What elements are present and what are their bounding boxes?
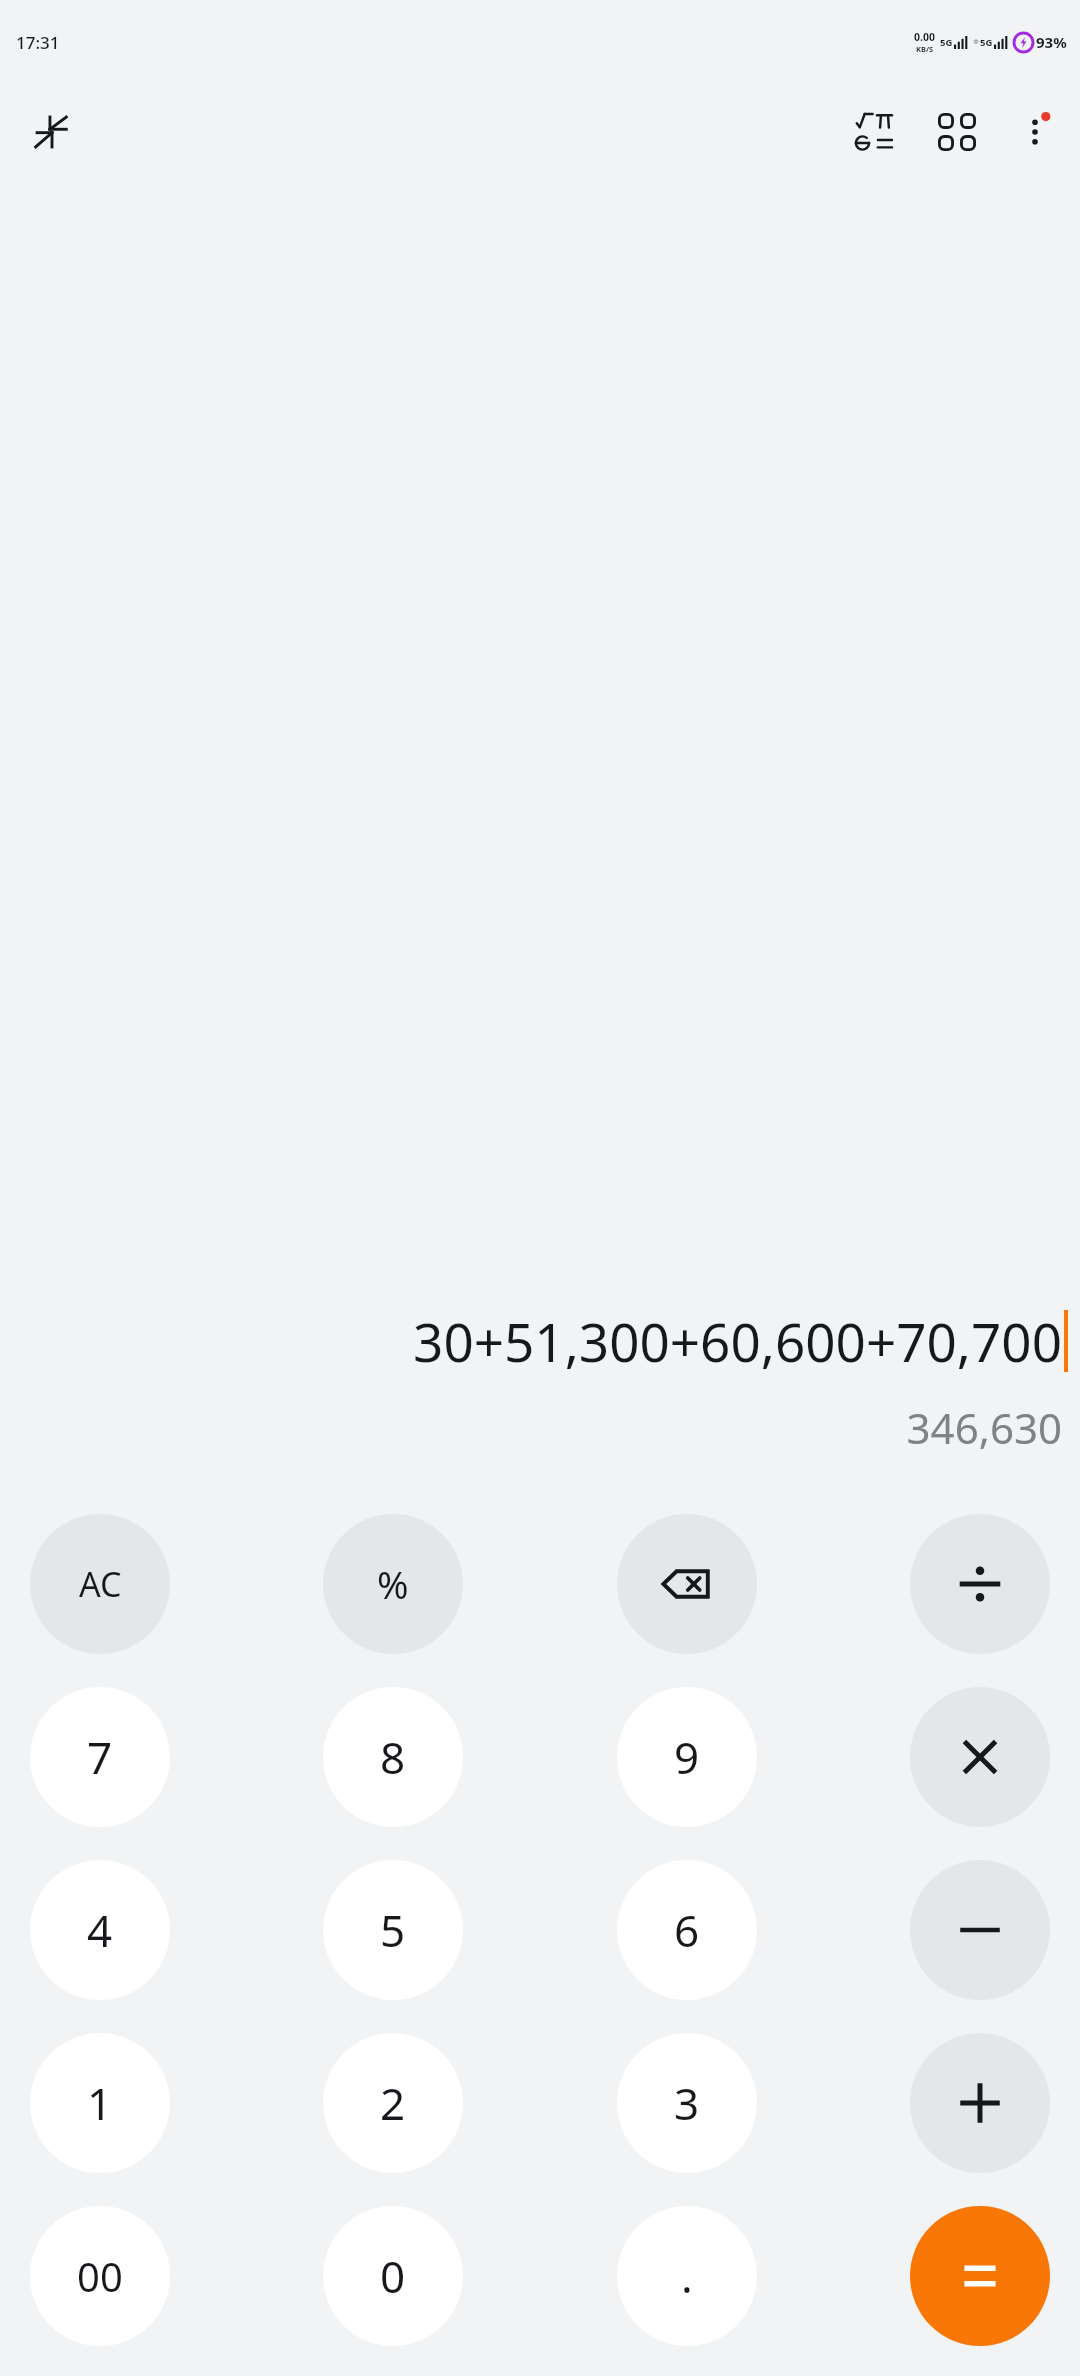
staticText: 6 [674,1900,700,1960]
staticText: KB/S [916,44,934,54]
staticText: 9 [674,1727,700,1787]
staticText: 93% [1036,32,1067,52]
button[interactable]: 5 [323,1860,463,2000]
button[interactable]: AC [30,1514,170,1654]
staticText: 5G [980,36,993,49]
button[interactable]: Equals [910,2206,1050,2346]
staticText: 0 [380,2246,406,2306]
button[interactable]: 00 [30,2206,170,2346]
button[interactable]: Minus [910,1860,1050,2000]
staticText: AC [79,1561,122,1607]
staticText: 17:31 [16,31,60,54]
staticText: 4 [87,1900,113,1960]
staticText: 0.00 [914,30,935,44]
button[interactable]: 9 [617,1687,757,1827]
button[interactable]: 3 [617,2033,757,2173]
button[interactable]: . [617,2206,757,2346]
button[interactable]: 8 [323,1687,463,1827]
button[interactable]: More options [1004,101,1066,163]
staticText: 7 [87,1727,113,1787]
button[interactable]: 2 [323,2033,463,2173]
button[interactable]: 7 [30,1687,170,1827]
button[interactable]: Plus [910,2033,1050,2173]
button[interactable]: Multiply [910,1687,1050,1827]
staticText: 346,630 [12,1399,1062,1456]
staticText: 3 [674,2073,700,2133]
button[interactable]: Backspace [617,1514,757,1654]
staticText: 1 [87,2073,113,2133]
staticText: 5G [940,36,953,49]
button[interactable]: 0 [323,2206,463,2346]
button[interactable]: Scientific mode [846,101,908,163]
button[interactable]: 1 [30,2033,170,2173]
button[interactable]: % [323,1514,463,1654]
button[interactable]: 4 [30,1860,170,2000]
staticText: 8 [380,1727,406,1787]
staticText: % [377,1558,409,1610]
button[interactable]: Converters [926,101,988,163]
button[interactable]: 6 [617,1860,757,2000]
staticText: . [681,2246,693,2306]
staticText: 5 [380,1900,406,1960]
staticText: 2 [380,2073,406,2133]
button[interactable]: Collapse [24,104,80,160]
button[interactable]: Divide [910,1514,1050,1654]
staticText: 30+51,300+60,600+70,700 [413,1305,1062,1377]
staticText: 00 [77,2249,123,2303]
